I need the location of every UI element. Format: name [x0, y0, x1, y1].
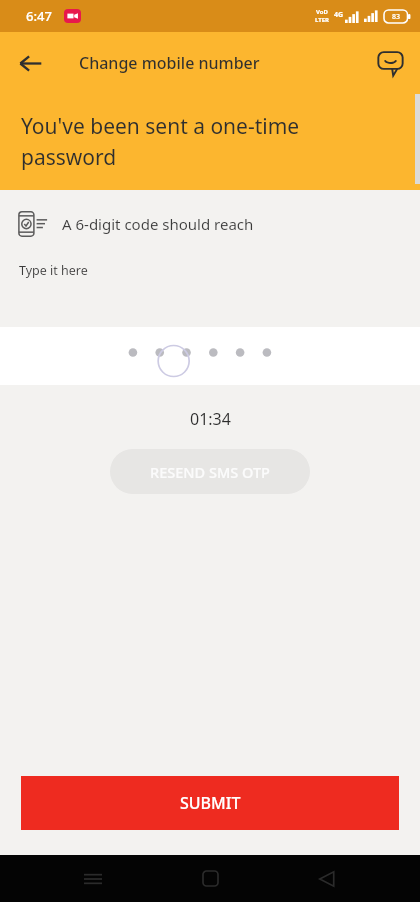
- staticText: VoD: [316, 8, 328, 16]
- staticText: A 6-digit code should reach: [62, 214, 254, 234]
- button[interactable]: SUBMIT: [21, 776, 399, 830]
- button[interactable]: Recent apps: [69, 855, 117, 902]
- button[interactable]: Home: [186, 855, 234, 902]
- button[interactable]: Enter OTP: [0, 327, 420, 385]
- button[interactable]: Back: [303, 855, 351, 902]
- staticText: You've been sent a one-time password: [21, 112, 358, 171]
- staticText: 4G: [334, 10, 344, 20]
- button[interactable]: RESEND SMS OTP: [110, 449, 310, 494]
- staticText: 01:34: [190, 408, 231, 430]
- staticText: SUBMIT: [180, 792, 241, 814]
- staticText: Type it here: [19, 262, 88, 279]
- staticText: 83: [392, 12, 401, 22]
- staticText: 6:47: [26, 7, 52, 25]
- staticText: Change mobile number: [79, 52, 260, 74]
- staticText: RESEND SMS OTP: [150, 462, 270, 482]
- button[interactable]: Chat support: [368, 41, 412, 85]
- button[interactable]: Back: [8, 41, 52, 85]
- staticText: LTER: [315, 16, 329, 24]
